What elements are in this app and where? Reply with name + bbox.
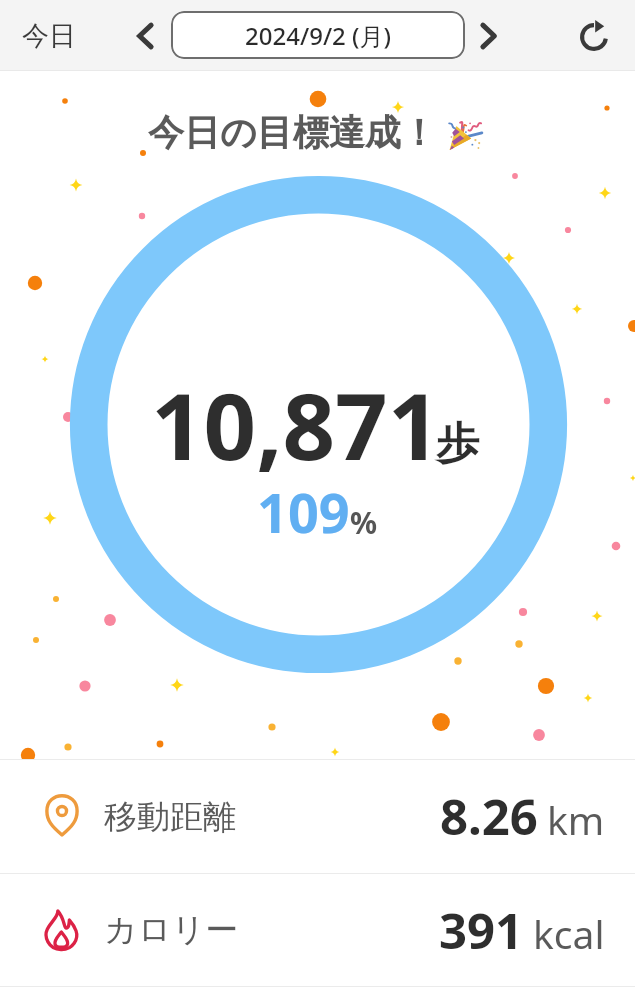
staticText: 8.26 bbox=[440, 783, 538, 850]
button[interactable]: カロリー bbox=[0, 874, 635, 986]
staticText: km bbox=[547, 793, 605, 846]
staticText: 移動距離 bbox=[104, 796, 236, 838]
button[interactable]: Refresh bbox=[562, 2, 626, 72]
button[interactable]: Next day bbox=[464, 1, 512, 71]
staticText: 今日の目標達成！ bbox=[148, 110, 437, 155]
staticText: 391 bbox=[439, 897, 524, 964]
staticText: 109 bbox=[257, 475, 350, 549]
staticText: % bbox=[350, 502, 378, 543]
staticText: kcal bbox=[533, 907, 605, 960]
button[interactable]: 移動距離 bbox=[0, 760, 635, 873]
button[interactable]: Previous day bbox=[122, 1, 170, 71]
button[interactable]: 今日 bbox=[14, 1, 84, 71]
staticText: 10,871 bbox=[151, 362, 441, 487]
staticText: 今日 bbox=[22, 19, 76, 53]
staticText: カロリー bbox=[104, 909, 239, 951]
button[interactable]: 2024/9/2 (月) bbox=[171, 11, 465, 59]
staticText: 歩 bbox=[436, 417, 479, 471]
staticText: 2024/9/2 (月) bbox=[245, 19, 392, 52]
